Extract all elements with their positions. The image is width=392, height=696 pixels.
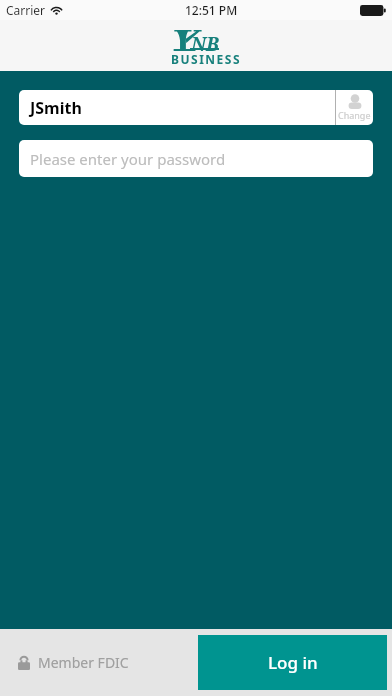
staticText: 12:51 PM [185,2,238,18]
button[interactable]: Member FDIC [18,653,129,672]
staticText: JSmith [30,97,82,119]
staticText: NB [191,31,219,57]
button[interactable]: Please enter your password [19,140,373,177]
staticText: Carrier [6,2,46,18]
staticText: BUSINESS [171,51,242,67]
staticText: Change [338,109,371,121]
button[interactable]: Log in [198,635,387,690]
button[interactable]: JSmith [19,90,335,125]
staticText: Member FDIC [38,653,129,672]
staticText: Log in [268,651,318,674]
button[interactable]: Change user [336,90,373,125]
staticText: Please enter your password [30,149,226,169]
